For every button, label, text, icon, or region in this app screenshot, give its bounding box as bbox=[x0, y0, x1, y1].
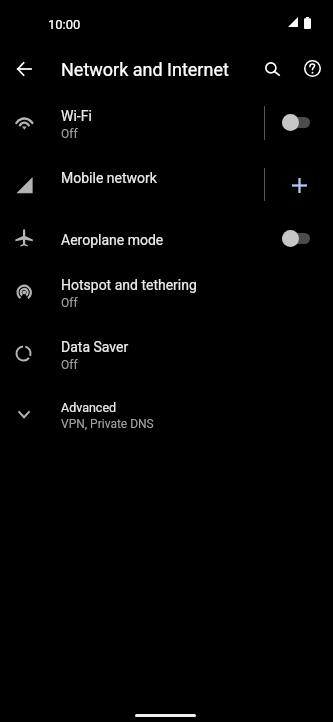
staticText: Data Saver bbox=[61, 339, 129, 355]
button[interactable] bbox=[0, 154, 333, 216]
staticText: Aeroplane mode bbox=[61, 232, 164, 248]
staticText: Network and Internet bbox=[61, 59, 229, 80]
staticText: Off bbox=[61, 296, 78, 310]
button[interactable] bbox=[0, 324, 333, 386]
staticText: Off bbox=[61, 358, 78, 372]
button[interactable] bbox=[0, 262, 333, 324]
button[interactable] bbox=[0, 386, 333, 448]
button[interactable]: Navigate up bbox=[4, 48, 44, 88]
staticText: VPN, Private DNS bbox=[61, 417, 154, 431]
button[interactable] bbox=[0, 92, 333, 154]
staticText: Off bbox=[61, 127, 78, 141]
button[interactable] bbox=[0, 216, 333, 262]
staticText: Hotspot and tethering bbox=[61, 277, 197, 293]
button[interactable]: Toggle bbox=[275, 108, 320, 137]
button[interactable]: Add network bbox=[284, 170, 314, 200]
button[interactable]: Search bbox=[252, 48, 292, 88]
staticText: Mobile network bbox=[61, 170, 157, 186]
button[interactable]: Help bbox=[292, 48, 332, 88]
button[interactable]: Toggle bbox=[275, 224, 320, 253]
staticText: 10:00 bbox=[48, 17, 81, 32]
staticText: Advanced bbox=[61, 400, 117, 415]
staticText: Wi-Fi bbox=[61, 108, 92, 124]
